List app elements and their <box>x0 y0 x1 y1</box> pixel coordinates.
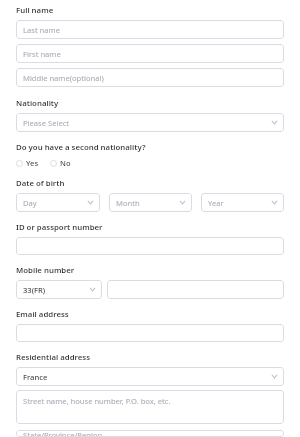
staticText: Street name, house number, P.O. box, etc… <box>23 396 171 406</box>
other: Open dropdown <box>86 198 95 207</box>
other: Open dropdown <box>88 285 97 294</box>
button[interactable] <box>107 280 284 299</box>
other: Open dropdown <box>178 198 187 207</box>
staticText: 33(FR) <box>23 285 46 295</box>
other: Open dropdown <box>270 118 279 127</box>
staticText: ID or passport number <box>16 222 103 233</box>
staticText: Yes <box>26 158 39 168</box>
button[interactable]: First name <box>16 44 284 63</box>
button[interactable]: France <box>16 367 284 386</box>
button[interactable]: Middle name(optional) <box>16 68 284 87</box>
staticText: Please Select <box>23 118 70 128</box>
button[interactable]: Month <box>109 193 192 212</box>
button[interactable]: Year <box>201 193 284 212</box>
button[interactable]: Day <box>16 193 100 212</box>
other: Open dropdown <box>270 198 279 207</box>
staticText: Month <box>116 198 140 208</box>
staticText: Nationality <box>16 98 59 109</box>
staticText: Year <box>208 198 224 208</box>
staticText: Mobile number <box>16 265 75 276</box>
button[interactable]: State/Province/Region <box>16 430 284 437</box>
staticText: State/Province/Region <box>23 430 103 437</box>
staticText: Day <box>23 198 37 208</box>
button[interactable]: Yes <box>16 158 39 168</box>
staticText: Do you have a second nationality? <box>16 142 146 153</box>
staticText: No <box>60 158 71 168</box>
button[interactable]: No <box>50 158 71 168</box>
button[interactable]: 33(FR) <box>16 280 102 299</box>
staticText: Middle name(optional) <box>23 73 104 83</box>
staticText: Email address <box>16 309 69 320</box>
staticText: Residential address <box>16 352 91 363</box>
staticText: Date of birth <box>16 178 65 189</box>
staticText: Last name <box>23 25 60 35</box>
button[interactable] <box>16 237 284 255</box>
other: Open dropdown <box>270 372 279 381</box>
staticText: France <box>23 372 48 382</box>
staticText: Full name <box>16 5 54 16</box>
button[interactable] <box>16 324 284 342</box>
staticText: First name <box>23 49 61 59</box>
button[interactable]: Street name, house number, P.O. box, etc… <box>16 390 284 424</box>
button[interactable]: Please Select <box>16 113 284 132</box>
button[interactable]: Last name <box>16 20 284 39</box>
